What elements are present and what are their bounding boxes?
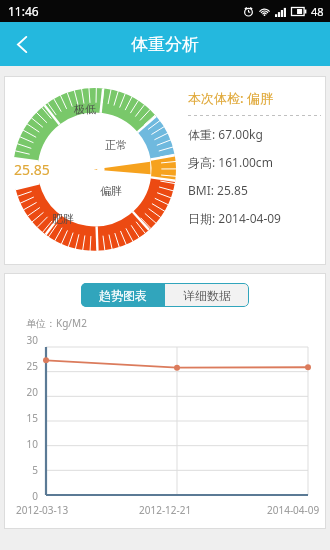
staticText: 0	[12, 489, 38, 503]
staticText: 偏胖	[100, 184, 122, 198]
staticText: 详细数据	[183, 288, 231, 303]
staticText: 体重分析	[131, 34, 199, 55]
staticText: 11:46	[8, 3, 39, 19]
staticText: 极低	[74, 102, 96, 116]
button[interactable]: 详细数据	[165, 283, 249, 307]
staticText: 2014-04-09	[267, 503, 320, 517]
staticText: 20	[12, 385, 38, 399]
staticText: 肥胖	[52, 212, 74, 226]
staticText: 趋势图表	[99, 288, 147, 303]
staticText: 30	[12, 333, 38, 347]
staticText: 25.85	[14, 160, 50, 179]
staticText: 48	[311, 4, 324, 19]
staticText: 单位：Kg/M2	[26, 316, 87, 330]
staticText: 体重: 67.00kg	[188, 126, 263, 142]
staticText: 10	[12, 437, 38, 451]
staticText: 25	[12, 359, 38, 373]
staticText: 15	[12, 411, 38, 425]
button[interactable]: 趋势图表	[81, 283, 165, 307]
staticText: BMI: 25.85	[188, 182, 248, 198]
staticText: 5	[12, 463, 38, 477]
staticText: 本次体检: 偏胖	[188, 89, 273, 107]
staticText: 日期: 2014-04-09	[188, 210, 281, 226]
staticText: 2012-03-13	[16, 503, 69, 517]
button[interactable]: Back	[0, 22, 44, 66]
staticText: 身高: 161.00cm	[188, 154, 273, 170]
staticText: 2012-12-21	[139, 503, 192, 517]
staticText: 正常	[105, 138, 127, 152]
